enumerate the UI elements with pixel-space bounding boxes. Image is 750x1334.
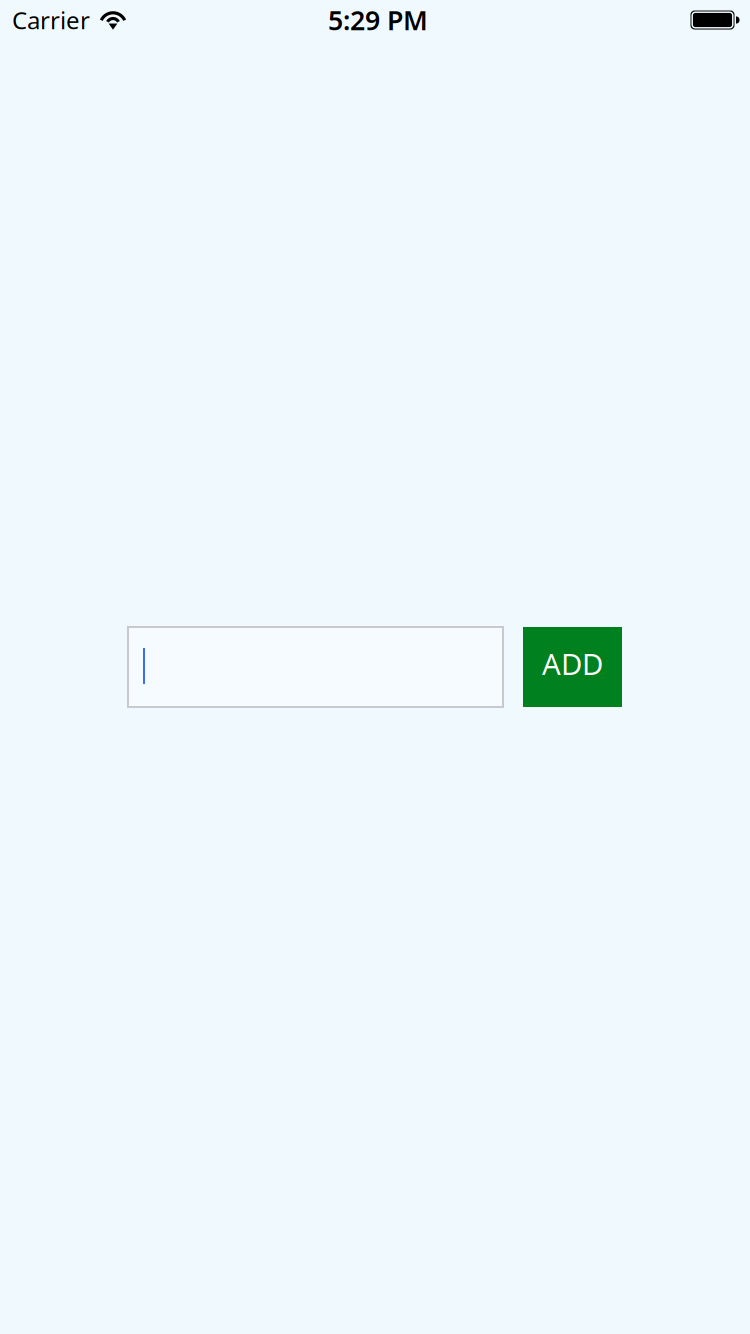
staticText: Carrier bbox=[12, 4, 90, 36]
staticText: ADD bbox=[542, 644, 603, 683]
button[interactable]: ADD bbox=[523, 627, 622, 707]
button[interactable]: Text field bbox=[128, 627, 503, 707]
staticText: 5:29 PM bbox=[328, 2, 428, 38]
